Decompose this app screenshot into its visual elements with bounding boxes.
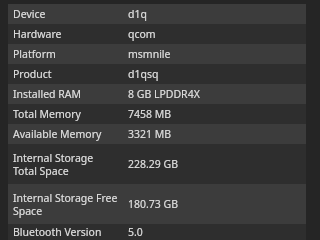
button[interactable]: Internal Storage Total Space [8,144,306,184]
staticText: d1q [128,7,147,21]
staticText: Bluetooth Version [13,225,102,239]
staticText: Hardware [13,27,62,41]
button[interactable]: Available Memory [8,124,306,144]
staticText: Total Memory [13,107,81,121]
staticText: Device [13,7,46,21]
button[interactable]: Bluetooth Version [8,224,306,240]
button[interactable]: Product [8,64,306,84]
button[interactable]: Hardware [8,24,306,44]
staticText: Internal Storage Total Space [13,151,94,178]
staticText: msmnile [128,47,171,61]
staticText: Product [13,67,52,81]
button[interactable]: Device [8,4,306,24]
staticText: Available Memory [13,127,102,141]
staticText: qcom [128,27,156,41]
staticText: 228.29 GB [128,157,179,171]
staticText: Installed RAM [13,87,82,101]
button[interactable]: Installed RAM [8,84,306,104]
button[interactable]: Internal Storage Free Space [8,184,306,224]
staticText: d1qsq [128,67,159,81]
staticText: 8 GB LPDDR4X [128,87,200,101]
staticText: Internal Storage Free Space [13,191,118,218]
staticText: 180.73 GB [128,197,179,211]
button[interactable]: Platform [8,44,306,64]
staticText: 3321 MB [128,127,172,141]
staticText: 7458 MB [128,107,172,121]
button[interactable]: Total Memory [8,104,306,124]
staticText: 5.0 [128,225,143,239]
staticText: Platform [13,47,56,61]
